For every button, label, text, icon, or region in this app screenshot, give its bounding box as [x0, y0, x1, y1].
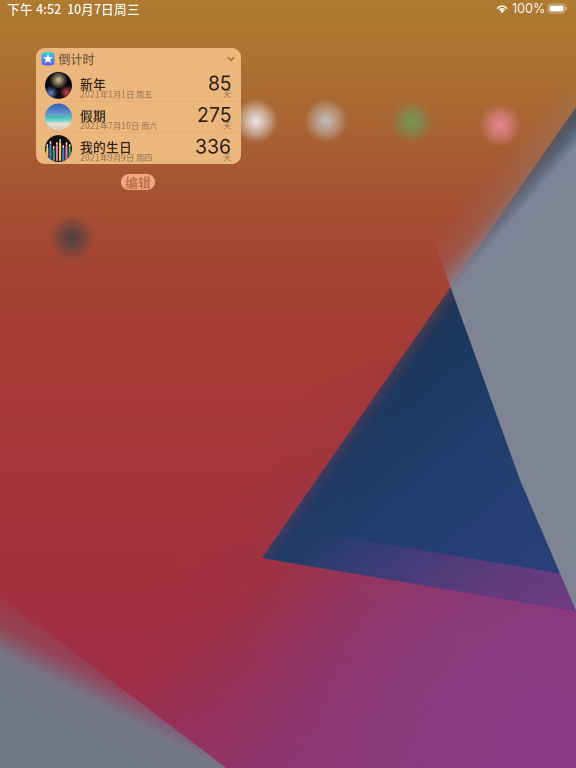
button[interactable]: Collapse widget	[221, 50, 241, 67]
staticText: 新年	[80, 74, 106, 92]
staticText: 100%	[512, 1, 545, 16]
staticText: 编辑	[125, 173, 151, 191]
button[interactable]: 倒计时	[36, 48, 241, 164]
staticText: 我的生日	[80, 137, 132, 156]
staticText: 倒计时	[58, 50, 94, 68]
staticText: 10月7日周三	[67, 0, 140, 18]
button[interactable]: 编辑	[121, 174, 155, 190]
staticText: 天	[223, 87, 231, 99]
staticText: 天	[223, 151, 231, 163]
staticText: 天	[223, 119, 231, 131]
staticText: 275	[197, 103, 231, 127]
staticText: 假期	[80, 106, 106, 124]
staticText: 2021年7月10日 周六	[80, 119, 157, 131]
staticText: 下午 4:52	[7, 0, 61, 18]
staticText: 2021年1月1日 周五	[80, 88, 152, 100]
staticText: 85	[208, 72, 231, 95]
staticText: 2021年9月9日 周四	[80, 151, 152, 163]
staticText: 336	[195, 135, 231, 158]
